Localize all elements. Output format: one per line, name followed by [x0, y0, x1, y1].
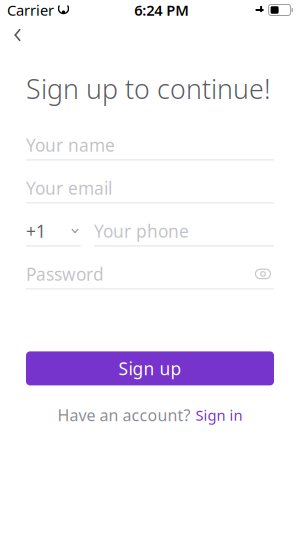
staticText: Password	[26, 262, 104, 285]
button[interactable]: Sign in	[195, 402, 242, 428]
button[interactable]: Sign up	[26, 351, 274, 385]
button[interactable]: +1	[26, 220, 81, 246]
staticText: Your name	[26, 133, 115, 156]
button[interactable]: Back	[0, 20, 34, 50]
staticText: Sign in	[195, 405, 242, 425]
staticText: Sign up to continue!	[26, 71, 271, 106]
staticText: Sign up	[118, 357, 181, 380]
button[interactable]: Show password	[252, 264, 274, 284]
staticText: Carrier	[7, 0, 54, 20]
staticText: Your email	[26, 176, 112, 199]
staticText: Have an account?	[57, 404, 190, 426]
staticText: 6:24 PM	[134, 0, 189, 20]
staticText: Your phone	[94, 219, 189, 242]
staticText: +1	[26, 219, 46, 242]
